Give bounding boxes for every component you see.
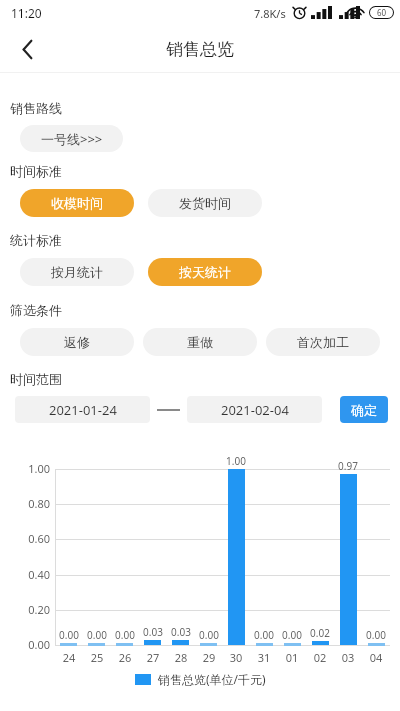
staticText: 30 [222, 650, 250, 665]
button[interactable]: 一号线>>> [20, 125, 123, 152]
staticText: 0.97 [332, 459, 364, 473]
staticText: 11:20 [11, 5, 42, 21]
staticText: 0.03 [165, 625, 197, 639]
staticText: 0.03 [137, 625, 169, 639]
staticText: 重做 [187, 334, 213, 350]
staticText: 销售总览(单位/千元) [158, 671, 266, 687]
staticText: 26 [111, 650, 139, 665]
staticText: 31 [250, 650, 278, 665]
staticText: 0.00 [193, 628, 225, 642]
button[interactable]: 按天统计 [148, 258, 262, 286]
staticText: 收模时间 [51, 195, 103, 211]
staticText: 1.00 [18, 461, 50, 476]
staticText: 02 [306, 650, 334, 665]
button[interactable]: 发货时间 [148, 189, 262, 217]
staticText: 25 [83, 650, 111, 665]
staticText: 确定 [351, 402, 377, 418]
button[interactable]: 2021-01-24 [15, 396, 150, 423]
button[interactable]: 收模时间 [20, 189, 134, 217]
staticText: 首次加工 [297, 334, 349, 350]
staticText: 筛选条件 [10, 302, 62, 318]
staticText: 1.00 [220, 454, 252, 468]
button[interactable]: 首次加工 [266, 328, 380, 356]
staticText: 01 [278, 650, 306, 665]
staticText: 7.8K/s [254, 6, 286, 21]
staticText: 28 [167, 650, 195, 665]
staticText: 0.00 [53, 628, 85, 642]
staticText: 按天统计 [179, 264, 231, 280]
staticText: 0.00 [360, 628, 392, 642]
staticText: 60 [377, 7, 387, 18]
staticText: 0.00 [81, 628, 113, 642]
button[interactable]: 重做 [143, 328, 257, 356]
staticText: 销售总览 [166, 39, 234, 60]
staticText: 0.00 [18, 637, 50, 652]
staticText: 27 [139, 650, 167, 665]
staticText: 0.80 [18, 496, 50, 511]
staticText: 0.60 [18, 531, 50, 546]
staticText: 0.20 [18, 602, 50, 617]
staticText: 时间范围 [10, 371, 62, 387]
staticText: 0.02 [304, 626, 336, 640]
staticText: 统计标准 [10, 232, 62, 248]
staticText: 销售路线 [10, 100, 62, 116]
staticText: 2021-01-24 [49, 401, 117, 419]
button[interactable]: 返修 [20, 328, 134, 356]
staticText: 时间标准 [10, 163, 62, 179]
staticText: 返修 [64, 334, 90, 350]
staticText: 0.40 [18, 567, 50, 582]
staticText: 2021-02-04 [221, 401, 289, 419]
staticText: 按月统计 [51, 264, 103, 280]
staticText: 0.00 [276, 628, 308, 642]
button[interactable]: Back [5, 27, 49, 72]
staticText: 04 [362, 650, 390, 665]
staticText: 0.00 [248, 628, 280, 642]
staticText: 29 [195, 650, 223, 665]
staticText: 一号线>>> [41, 130, 103, 148]
button[interactable]: 确定 [340, 396, 388, 423]
staticText: 24 [55, 650, 83, 665]
button[interactable]: 按月统计 [20, 258, 134, 286]
staticText: 发货时间 [179, 195, 231, 211]
button[interactable]: 2021-02-04 [187, 396, 322, 423]
staticText: 03 [334, 650, 362, 665]
staticText: 0.00 [109, 628, 141, 642]
